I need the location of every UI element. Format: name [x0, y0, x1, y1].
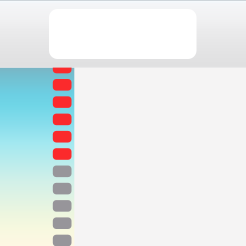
button[interactable]: Chapter 10 [53, 217, 71, 229]
button[interactable]: Chapter 7 [53, 165, 71, 177]
button[interactable]: Chapter 9 [53, 200, 71, 212]
button[interactable]: Chapter 4 [53, 114, 71, 125]
button[interactable]: Chapter 2 [53, 79, 71, 91]
button[interactable]: Chapter 5 [53, 131, 71, 142]
button[interactable]: Chapter 1 [53, 62, 71, 73]
button[interactable]: Chapter 3 [53, 96, 71, 108]
button[interactable]: Chapter 11 [53, 235, 71, 246]
button[interactable]: Chapter 8 [53, 183, 71, 194]
button[interactable]: Chapter 6 [53, 148, 71, 160]
